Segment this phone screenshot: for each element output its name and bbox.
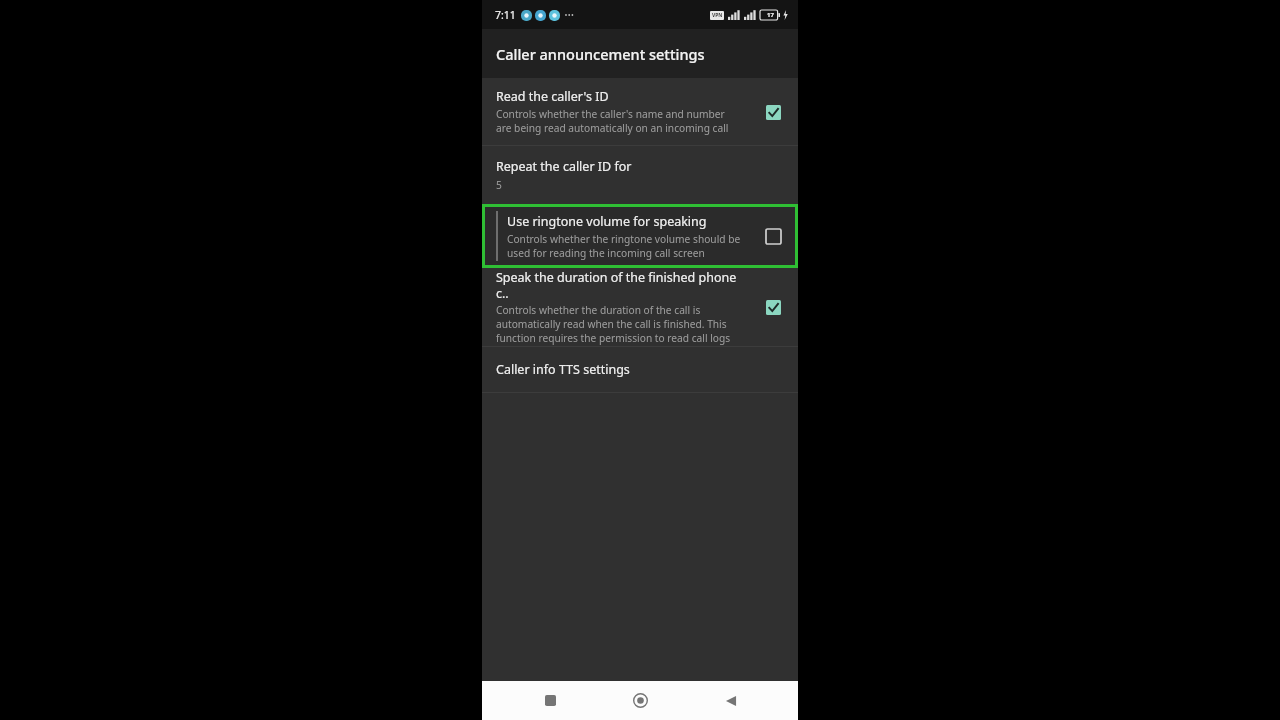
button[interactable]: Use ringtone volume for speaking: [485, 207, 795, 265]
button[interactable]: Disabled: [760, 223, 786, 249]
staticText: Caller announcement settings: [496, 44, 705, 64]
button[interactable]: Caller info TTS settings: [482, 347, 798, 392]
staticText: 5: [496, 178, 502, 192]
staticText: Controls whether the ringtone volume sho…: [507, 232, 741, 260]
button[interactable]: Home: [617, 681, 663, 720]
staticText: 17: [767, 11, 774, 19]
staticText: Repeat the caller ID for: [496, 158, 632, 175]
staticText: Read the caller's ID: [496, 88, 609, 105]
staticText: Speak the duration of the finished phone…: [496, 269, 750, 301]
staticText: Caller info TTS settings: [496, 361, 630, 378]
button[interactable]: Read the caller's ID: [482, 78, 798, 145]
staticText: Use ringtone volume for speaking: [507, 213, 707, 230]
button[interactable]: Enabled: [760, 99, 786, 125]
button[interactable]: Speak the duration of the finished phone…: [482, 268, 798, 346]
button[interactable]: Repeat the caller ID for: [482, 146, 798, 204]
staticText: 7:11: [495, 8, 516, 22]
button[interactable]: Back: [708, 681, 754, 720]
staticText: VPN: [712, 12, 723, 19]
staticText: Controls whether the caller's name and n…: [496, 107, 729, 135]
button[interactable]: Enabled: [760, 294, 786, 320]
staticText: Controls whether the duration of the cal…: [496, 303, 731, 345]
button[interactable]: Recent apps: [527, 681, 573, 720]
